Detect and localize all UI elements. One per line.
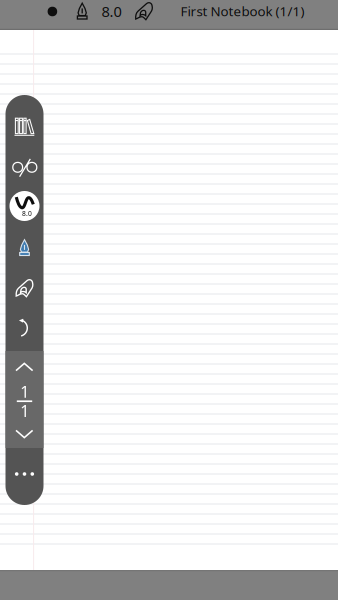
button[interactable]: Undo	[5, 310, 43, 346]
staticText: First Notebook (1/1)	[180, 2, 304, 20]
button[interactable]: Notebooks	[5, 105, 43, 149]
staticText: 8.0	[101, 1, 121, 21]
button[interactable]: Stroke width 8.0	[5, 188, 43, 224]
staticText: 8.0	[22, 209, 32, 218]
button[interactable]: Lasso select	[5, 147, 43, 187]
button[interactable]: Eraser tool	[132, 0, 156, 24]
staticText: 1	[20, 381, 29, 402]
button[interactable]: Eraser	[5, 270, 43, 306]
button[interactable]: Next page	[5, 420, 43, 448]
staticText: 1	[20, 400, 29, 421]
button[interactable]: Pen tool	[70, 0, 94, 24]
button[interactable]: Pen	[5, 230, 43, 266]
button[interactable]: Previous page	[5, 353, 43, 381]
button[interactable]: More options	[5, 454, 43, 494]
button[interactable]: Colour	[39, 0, 65, 24]
